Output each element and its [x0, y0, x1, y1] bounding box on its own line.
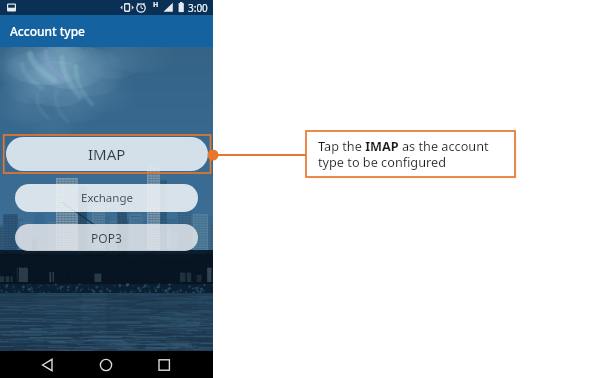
button[interactable]: IMAP	[6, 137, 208, 171]
staticText: POP3	[91, 230, 122, 246]
button[interactable]: Exchange	[15, 184, 198, 212]
button[interactable]: Back	[24, 351, 71, 378]
staticText: Exchange	[81, 190, 133, 206]
staticText: H	[153, 0, 159, 10]
button[interactable]: Home	[83, 351, 130, 378]
staticText: Tap the IMAP as the account type to be c…	[318, 137, 509, 171]
button[interactable]: Recent apps	[141, 351, 188, 378]
button[interactable]: POP3	[15, 224, 198, 251]
staticText: Account type	[10, 23, 86, 39]
staticText: 3:00	[188, 1, 208, 15]
staticText: IMAP	[88, 144, 126, 164]
